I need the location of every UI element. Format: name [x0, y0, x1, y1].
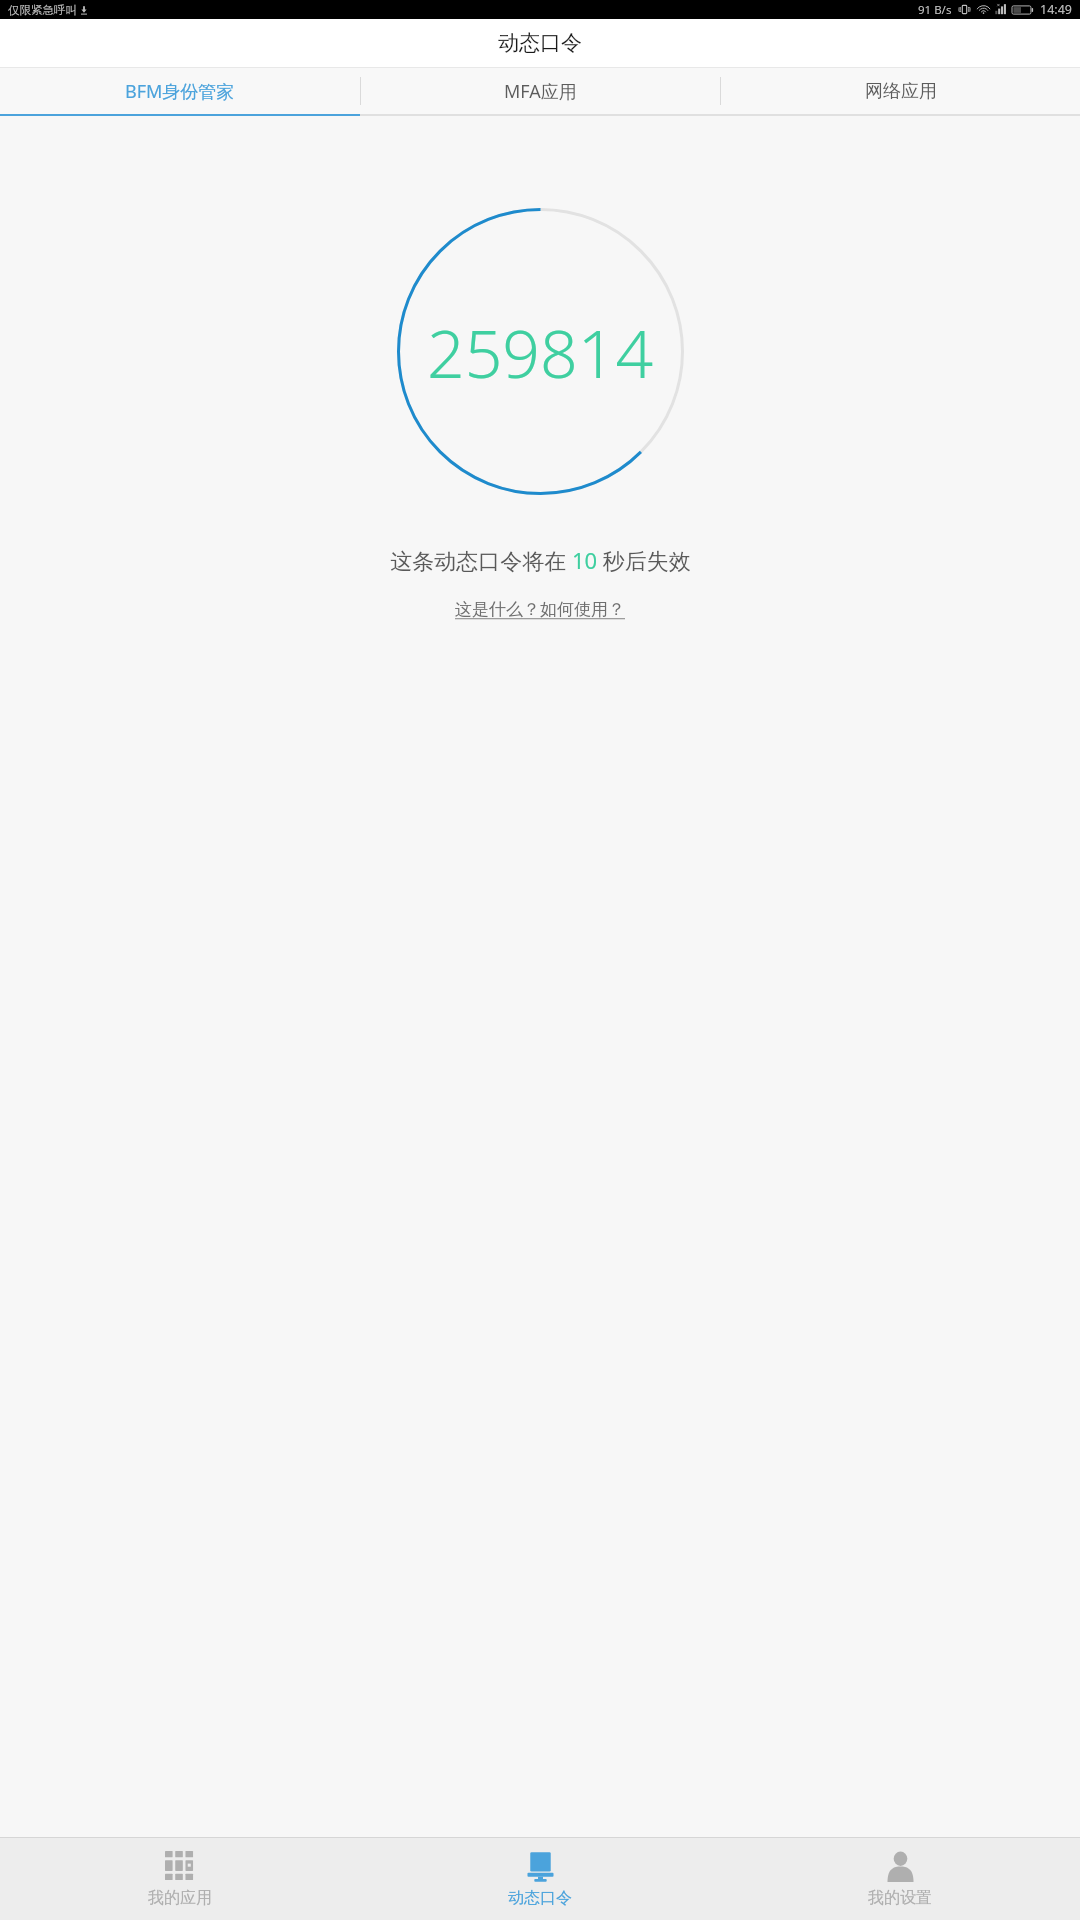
staticText: 网络应用	[865, 80, 937, 103]
button[interactable]: 网络应用	[721, 68, 1080, 114]
staticText: 我的应用	[148, 1888, 212, 1908]
button[interactable]: MFA应用	[361, 68, 720, 114]
staticText: 91 B/s	[918, 2, 952, 18]
button[interactable]: 我的设置	[720, 1838, 1080, 1920]
staticText: 259814	[427, 307, 654, 397]
staticText: BFM身份管家	[125, 79, 235, 104]
staticText: 我的设置	[868, 1888, 932, 1908]
staticText: 14:49	[1040, 1, 1072, 18]
staticText: 这条动态口令将在 10 秒后失效	[390, 545, 691, 575]
staticText: 动态口令	[508, 1888, 572, 1908]
button[interactable]: BFM身份管家	[0, 68, 360, 114]
button[interactable]: 我的应用	[0, 1838, 360, 1920]
staticText: MFA应用	[504, 79, 577, 104]
staticText: 这是什么？如何使用？	[455, 599, 625, 620]
staticText: 仅限紧急呼叫	[8, 3, 77, 17]
button[interactable]: 259814	[397, 208, 684, 495]
button[interactable]: 这是什么？如何使用？	[451, 597, 629, 622]
staticText: 动态口令	[498, 30, 582, 56]
button[interactable]: 动态口令	[360, 1838, 720, 1920]
